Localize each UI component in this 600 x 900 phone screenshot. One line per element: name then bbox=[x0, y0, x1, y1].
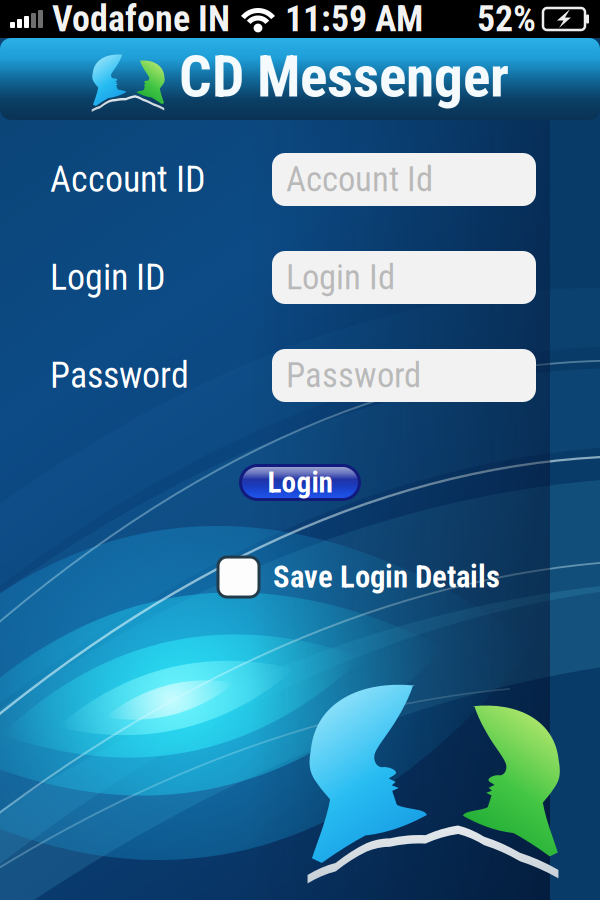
staticText: CD Messenger bbox=[179, 43, 509, 111]
staticText: 52% bbox=[477, 0, 536, 40]
button[interactable]: Account Id bbox=[272, 153, 536, 206]
staticText: Login Id bbox=[286, 257, 395, 298]
staticText: Vodafone IN bbox=[52, 0, 230, 40]
staticText: Save Login Details bbox=[273, 559, 500, 595]
button[interactable]: Login Id bbox=[272, 251, 536, 304]
staticText: Password bbox=[50, 354, 189, 397]
staticText: Login bbox=[267, 465, 332, 500]
staticText: Password bbox=[286, 355, 421, 396]
staticText: 11:59 AM bbox=[285, 0, 423, 40]
button[interactable]: Login bbox=[239, 464, 361, 501]
staticText: Account Id bbox=[286, 159, 433, 200]
button[interactable]: Password bbox=[272, 349, 536, 402]
staticText: Login ID bbox=[50, 256, 166, 299]
button[interactable]: Save Login Details bbox=[218, 557, 500, 597]
staticText: Account ID bbox=[50, 158, 206, 201]
